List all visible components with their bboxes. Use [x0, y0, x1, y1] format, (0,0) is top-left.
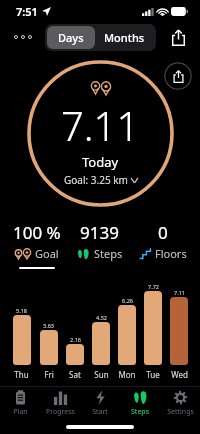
button[interactable]: 7.11: [168, 283, 190, 365]
staticText: 7.72: [148, 283, 159, 290]
button[interactable]: 0: [131, 221, 194, 267]
button[interactable]: 2.16: [64, 283, 86, 365]
staticText: Thu: [14, 369, 29, 380]
staticText: Today: [82, 153, 119, 171]
staticText: Progress: [46, 407, 75, 417]
staticText: Steps: [131, 407, 149, 417]
staticText: Sun: [94, 369, 109, 380]
staticText: 7.11: [174, 289, 185, 296]
button[interactable]: 5.18: [10, 283, 33, 365]
button[interactable]: 4.52: [90, 283, 112, 365]
staticText: 7:51: [16, 4, 38, 19]
staticText: Fri: [44, 369, 54, 380]
button[interactable]: Plan: [0, 387, 40, 420]
staticText: 9139: [80, 221, 119, 244]
staticText: Goal: 3.25 km: [64, 173, 128, 187]
button[interactable]: More options: [8, 30, 38, 44]
staticText: Days: [58, 30, 84, 45]
button[interactable]: Months: [95, 26, 154, 49]
staticText: Mon: [118, 369, 136, 380]
staticText: Steps: [94, 246, 123, 261]
button[interactable]: Start: [80, 387, 120, 420]
button[interactable]: Goal: 3.25 km: [62, 173, 140, 187]
button[interactable]: Steps: [120, 387, 160, 420]
staticText: 6.26: [122, 297, 133, 304]
button[interactable]: 6.26: [116, 283, 138, 365]
staticText: Wed: [171, 369, 188, 380]
staticText: Sat: [69, 369, 81, 380]
staticText: Plan: [13, 407, 28, 417]
staticText: 100 %: [13, 221, 61, 244]
staticText: Floors: [155, 246, 187, 261]
staticText: Start: [92, 407, 108, 417]
staticText: 4.52: [96, 314, 107, 321]
button[interactable]: Days: [47, 26, 95, 49]
staticText: 0: [158, 221, 168, 244]
button[interactable]: 3.63: [37, 283, 60, 365]
staticText: Tue: [146, 369, 160, 380]
staticText: Settings: [167, 407, 194, 417]
staticText: Goal: [35, 246, 59, 261]
staticText: 3.63: [43, 322, 54, 329]
button[interactable]: Export: [164, 62, 192, 90]
staticText: 7.11: [61, 98, 140, 152]
button[interactable]: 100 %: [6, 221, 68, 269]
button[interactable]: 7.72: [142, 283, 164, 365]
button[interactable]: 9139: [68, 221, 131, 267]
button[interactable]: Settings: [160, 387, 200, 420]
staticText: Months: [104, 30, 145, 45]
button[interactable]: Share: [166, 25, 190, 49]
staticText: 5.18: [16, 307, 27, 314]
button[interactable]: Progress: [40, 387, 80, 420]
staticText: 2.16: [70, 336, 81, 343]
